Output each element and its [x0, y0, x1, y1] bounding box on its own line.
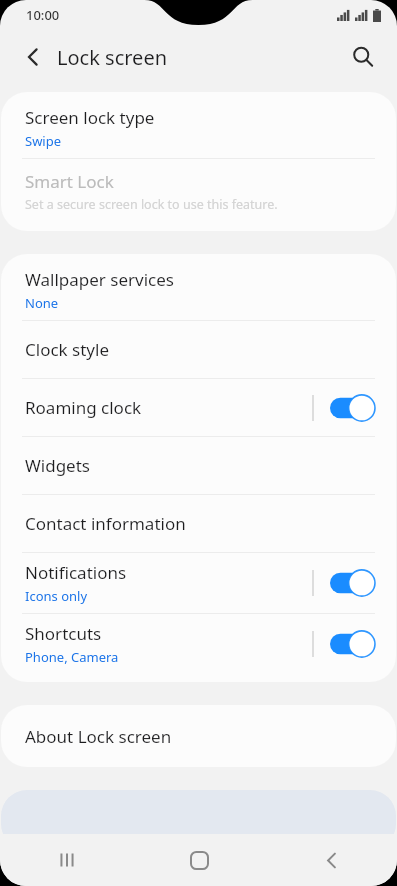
staticText: Lock screen	[57, 44, 168, 71]
button[interactable]: Back	[14, 38, 52, 76]
button[interactable]: Toggle on	[330, 394, 378, 422]
staticText: Clock style	[25, 338, 109, 361]
button[interactable]: Shortcuts	[1, 614, 396, 674]
button[interactable]	[1, 790, 396, 850]
staticText: Smart Lock	[25, 170, 114, 193]
staticText: About Lock screen	[25, 725, 172, 748]
staticText: Screen lock type	[25, 106, 155, 129]
button[interactable]: Screen lock type	[1, 98, 396, 158]
staticText: 10:00	[26, 6, 60, 24]
button[interactable]: Home	[133, 834, 265, 886]
button[interactable]: Search	[343, 37, 383, 77]
button[interactable]: Wallpaper services	[1, 260, 396, 320]
staticText: Shortcuts	[25, 622, 102, 645]
button[interactable]: Smart Lock	[1, 159, 396, 223]
button[interactable]: Contact information	[1, 495, 396, 552]
button[interactable]: Roaming clock	[1, 379, 396, 436]
staticText: Icons only	[25, 587, 88, 605]
button[interactable]: Recent apps	[0, 834, 133, 886]
staticText: None	[25, 294, 59, 312]
button[interactable]: Toggle on	[330, 630, 378, 658]
button[interactable]: Toggle on	[330, 569, 378, 597]
button[interactable]: Clock style	[1, 321, 396, 378]
staticText: Roaming clock	[25, 396, 142, 419]
button[interactable]: Back	[265, 834, 397, 886]
staticText: Contact information	[25, 512, 186, 535]
button[interactable]: About Lock screen	[1, 705, 396, 767]
staticText: Swipe	[25, 132, 62, 150]
staticText: Wallpaper services	[25, 268, 174, 291]
staticText: Phone, Camera	[25, 648, 119, 666]
button[interactable]: Notifications	[1, 553, 396, 613]
button[interactable]: Widgets	[1, 437, 396, 494]
staticText: Widgets	[25, 454, 90, 477]
staticText: Set a secure screen lock to use this fea…	[25, 196, 278, 213]
staticText: Notifications	[25, 561, 127, 584]
